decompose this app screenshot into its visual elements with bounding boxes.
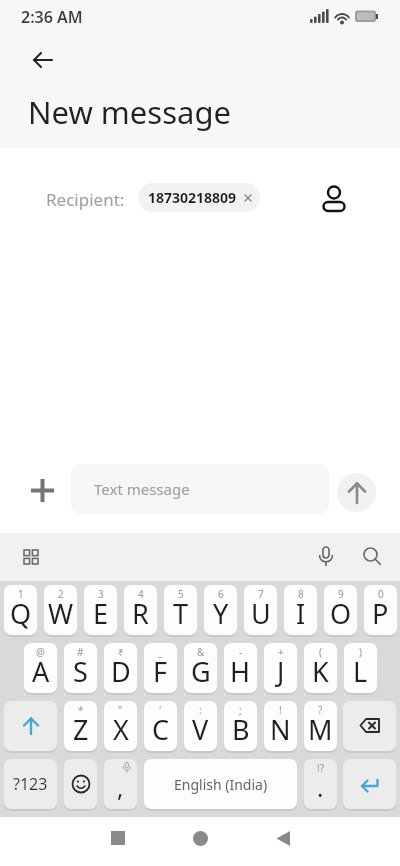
staticText: +: [278, 645, 284, 659]
staticText: &: [197, 645, 205, 659]
button[interactable]: !?: [304, 759, 337, 809]
button[interactable]: ': [144, 701, 177, 751]
staticText: N: [270, 711, 291, 748]
staticText: 2: [58, 587, 64, 601]
staticText: -: [239, 645, 243, 659]
button[interactable]: [312, 543, 340, 571]
staticText: !: [279, 703, 282, 717]
staticText: ,: [117, 771, 124, 804]
button[interactable]: 6: [204, 585, 237, 635]
button[interactable]: English (India): [144, 759, 297, 809]
staticText: 8: [298, 587, 304, 601]
staticText: G: [191, 653, 211, 690]
staticText: 0: [378, 587, 384, 601]
staticText: 5: [178, 587, 184, 601]
button[interactable]: @: [24, 643, 57, 693]
staticText: 18730218809: [148, 188, 237, 207]
staticText: New message: [28, 91, 231, 133]
button[interactable]: [318, 182, 350, 214]
staticText: Recipient:: [46, 188, 125, 211]
staticText: Z: [73, 711, 89, 748]
staticText: (: [319, 645, 322, 659]
button[interactable]: +: [264, 643, 297, 693]
button[interactable]: 9: [324, 585, 357, 635]
staticText: 7: [258, 587, 264, 601]
button[interactable]: ?: [304, 701, 337, 751]
staticText: ;: [239, 703, 242, 717]
button[interactable]: _: [144, 643, 177, 693]
button[interactable]: [64, 759, 97, 809]
staticText: *: [78, 703, 84, 717]
button[interactable]: 5: [164, 585, 197, 635]
button[interactable]: [343, 759, 396, 809]
staticText: R: [132, 595, 149, 632]
button[interactable]: ;: [224, 701, 257, 751]
button[interactable]: [17, 543, 45, 571]
button[interactable]: &: [184, 643, 217, 693]
staticText: M: [308, 711, 333, 748]
button[interactable]: :: [184, 701, 217, 751]
staticText: _: [158, 645, 163, 659]
staticText: D: [111, 653, 131, 690]
staticText: ?123: [13, 773, 48, 795]
staticText: :: [199, 703, 202, 717]
button[interactable]: [358, 543, 386, 571]
staticText: .: [317, 771, 324, 804]
staticText: L: [353, 653, 368, 690]
button[interactable]: [4, 701, 57, 751]
staticText: W: [48, 595, 74, 632]
staticText: @: [36, 645, 45, 659]
staticText: English (India): [174, 775, 268, 794]
staticText: A: [32, 653, 50, 690]
staticText: V: [192, 711, 209, 748]
button[interactable]: 3: [84, 585, 117, 635]
button[interactable]: [337, 473, 376, 512]
button[interactable]: #: [64, 643, 97, 693]
button[interactable]: ": [104, 701, 137, 751]
staticText: Y: [213, 595, 229, 632]
staticText: !?: [317, 761, 325, 775]
button[interactable]: [186, 824, 214, 852]
staticText: K: [312, 653, 329, 690]
button[interactable]: -: [224, 643, 257, 693]
button[interactable]: 18730218809: [138, 183, 260, 212]
button[interactable]: 4: [124, 585, 157, 635]
staticText: 9: [338, 587, 344, 601]
staticText: #: [77, 645, 84, 659]
staticText: C: [152, 711, 170, 748]
button[interactable]: [268, 824, 296, 852]
staticText: B: [232, 711, 250, 748]
staticText: X: [113, 711, 129, 748]
staticText: Text message: [94, 479, 190, 499]
staticText: ": [118, 703, 123, 717]
button[interactable]: [104, 824, 132, 852]
staticText: 2:36 AM: [21, 6, 83, 28]
button[interactable]: 2: [44, 585, 77, 635]
staticText: J: [277, 653, 285, 690]
staticText: 4: [138, 587, 144, 601]
button[interactable]: Text message: [71, 464, 329, 514]
button[interactable]: ?123: [4, 759, 57, 809]
staticText: P: [372, 595, 389, 632]
button[interactable]: *: [64, 701, 97, 751]
staticText: 1: [18, 587, 24, 601]
staticText: ': [159, 703, 162, 717]
staticText: ₹: [118, 645, 124, 659]
button[interactable]: ): [344, 643, 377, 693]
staticText: O: [330, 595, 352, 632]
button[interactable]: 1: [4, 585, 37, 635]
button[interactable]: ₹: [104, 643, 137, 693]
button[interactable]: ,: [104, 759, 137, 809]
staticText: Q: [10, 595, 32, 632]
button[interactable]: 0: [364, 585, 397, 635]
staticText: H: [230, 653, 251, 690]
staticText: 6: [218, 587, 224, 601]
button[interactable]: [343, 701, 396, 751]
staticText: 3: [98, 587, 104, 601]
button[interactable]: [28, 45, 58, 75]
button[interactable]: 8: [284, 585, 317, 635]
button[interactable]: !: [264, 701, 297, 751]
button[interactable]: (: [304, 643, 337, 693]
button[interactable]: 7: [244, 585, 277, 635]
button[interactable]: [28, 476, 57, 505]
